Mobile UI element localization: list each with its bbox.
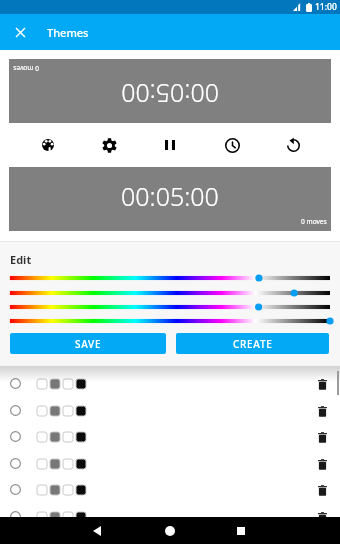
button[interactable]: Delete xyxy=(312,454,332,474)
staticText: SAVE xyxy=(75,337,102,351)
button[interactable]: Delete xyxy=(312,401,332,421)
button[interactable] xyxy=(0,314,340,328)
staticText: 00:05:00 xyxy=(121,179,219,213)
button[interactable] xyxy=(0,286,340,300)
button[interactable] xyxy=(0,271,340,285)
button[interactable]: CREATE xyxy=(176,333,329,354)
button[interactable]: Back xyxy=(81,517,113,544)
button[interactable]: Home xyxy=(154,517,186,544)
button[interactable]: Delete xyxy=(0,503,340,530)
button[interactable]: Palette xyxy=(34,131,62,159)
button[interactable]: Close xyxy=(8,20,32,44)
button[interactable]: 00:05:00 xyxy=(9,59,331,123)
staticText: CREATE xyxy=(233,337,273,351)
button[interactable]: 00:05:00 xyxy=(9,167,331,231)
button[interactable]: Delete xyxy=(312,480,332,500)
button[interactable]: SAVE xyxy=(10,333,166,354)
staticText: 0 moves xyxy=(13,64,39,73)
button[interactable]: Delete xyxy=(0,450,340,477)
staticText: Themes xyxy=(47,25,89,40)
button[interactable]: Delete xyxy=(312,507,332,527)
button[interactable]: Delete xyxy=(312,374,332,394)
staticText: 00:05:00 xyxy=(121,77,219,111)
button[interactable]: Delete xyxy=(0,476,340,503)
staticText: 11:00 xyxy=(315,1,337,13)
button[interactable]: Pause xyxy=(156,131,184,159)
button[interactable]: Recents xyxy=(225,517,257,544)
button[interactable]: Settings xyxy=(95,131,123,159)
button[interactable]: Reset xyxy=(279,131,307,159)
button[interactable]: History xyxy=(218,131,246,159)
button[interactable]: Delete xyxy=(0,370,340,397)
button[interactable]: Delete xyxy=(312,427,332,447)
staticText: 0 moves xyxy=(301,217,327,226)
staticText: Edit xyxy=(10,252,32,267)
button[interactable] xyxy=(0,300,340,314)
button[interactable]: Delete xyxy=(0,397,340,424)
button[interactable]: Delete xyxy=(0,423,340,450)
